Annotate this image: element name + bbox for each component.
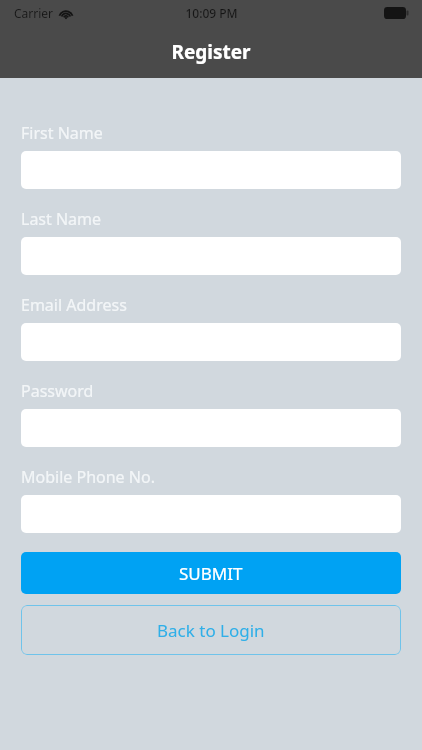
button[interactable]: SUBMIT: [21, 552, 401, 594]
staticText: Last Name: [21, 208, 102, 230]
staticText: Register: [171, 39, 251, 65]
staticText: Carrier: [14, 5, 54, 21]
staticText: Back to Login: [157, 619, 265, 642]
staticText: First Name: [21, 122, 103, 144]
button[interactable]: Back to Login: [21, 605, 401, 655]
staticText: Password: [21, 380, 94, 402]
staticText: Email Address: [21, 294, 127, 316]
staticText: SUBMIT: [179, 562, 243, 585]
staticText: Mobile Phone No.: [21, 466, 155, 488]
staticText: 10:09 PM: [185, 5, 238, 21]
